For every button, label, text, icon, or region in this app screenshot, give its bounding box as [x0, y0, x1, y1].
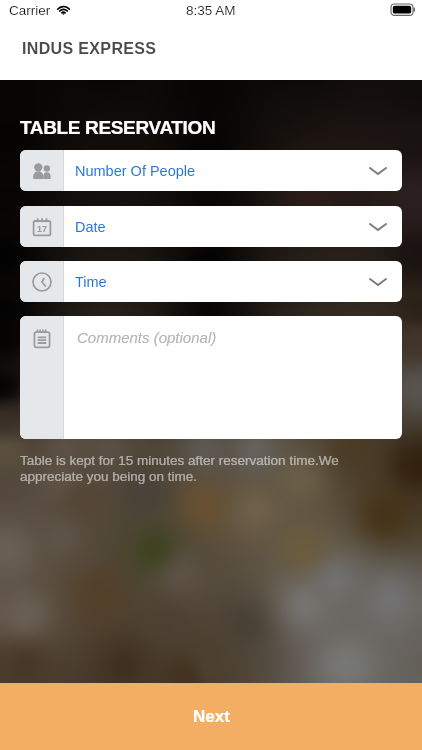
button[interactable]: Time	[20, 261, 402, 302]
button[interactable]: Next	[0, 683, 422, 750]
button[interactable]: 17	[20, 206, 402, 247]
button[interactable]: Comments (optional)	[20, 316, 402, 439]
staticText: Time	[75, 274, 107, 290]
staticText: Date	[75, 219, 106, 235]
staticText: Comments (optional)	[77, 329, 217, 346]
staticText: Table is kept for 15 minutes after reser…	[20, 453, 364, 484]
button[interactable]: Number Of People	[20, 150, 402, 191]
staticText: Next	[193, 707, 230, 726]
staticText: INDUS EXPRESS	[22, 40, 157, 58]
staticText: 8:35 AM	[186, 3, 236, 18]
staticText: 17	[37, 224, 48, 234]
staticText: Carrier	[9, 3, 51, 18]
staticText: Number Of People	[75, 163, 196, 179]
staticText: TABLE RESERVATION	[20, 117, 216, 138]
